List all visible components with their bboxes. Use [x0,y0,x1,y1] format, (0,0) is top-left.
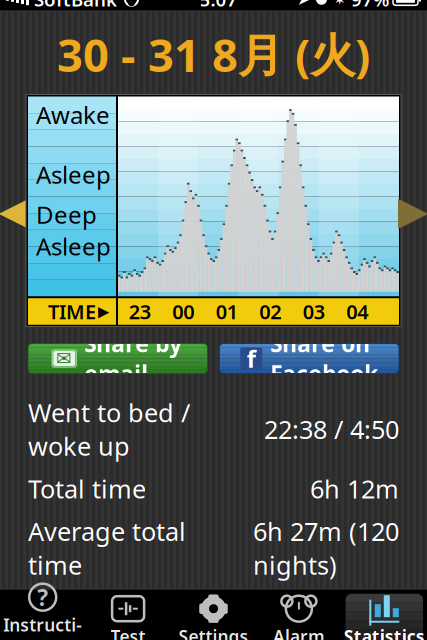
button[interactable]: Settings [171,592,256,640]
staticText: 23 [129,298,151,325]
staticText: 01 [216,298,238,325]
staticText: ✷ [333,0,346,8]
staticText: 5:07 [199,0,237,12]
staticText: 02 [259,298,281,325]
staticText: 22:38 / 4:50 [264,412,399,446]
staticText: f [247,343,256,374]
staticText: Total time [28,472,146,505]
staticText: 6h 12m [310,472,399,505]
button[interactable]: Statistics [342,592,427,640]
staticText: ✉ [56,348,72,369]
staticText: 6h 27m (120 nights) [253,514,399,582]
button[interactable]: Alarm [256,592,342,640]
staticText: 30 - 31 8月 (火) [57,24,370,84]
staticText: ▶ [98,303,109,320]
staticText: ➤ [297,0,310,8]
staticText: 00 [172,298,194,325]
staticText: Alarm [273,625,325,640]
button[interactable]: Test [85,592,171,640]
staticText: Awake [36,99,110,131]
staticText: Share on Facebook [270,328,378,389]
staticText: Went to bed / woke up [28,395,190,463]
staticText: 97% [351,0,389,12]
staticText: ▶ [397,188,427,233]
staticText: Average total time [28,514,186,582]
staticText: Asleep [36,230,111,262]
staticText: Settings [178,625,248,640]
staticText: 03 [303,298,325,325]
staticText: SoftBank [34,0,117,12]
button[interactable]: Previous night [2,175,26,245]
staticText: Share by email [84,328,182,389]
button[interactable]: ? [0,592,85,640]
button[interactable]: Next night [401,175,425,245]
staticText: Test [111,625,146,640]
button[interactable]: f [219,343,399,373]
staticText: Statistics [344,625,425,640]
staticText: ◀ [0,188,29,233]
button[interactable]: ✉ [28,343,207,373]
staticText: 04 [346,298,368,325]
staticText: Deep [36,198,97,230]
staticText: TIME [48,298,96,325]
staticText: Asleep [36,159,111,190]
staticText: ? [37,582,48,612]
staticText: Instructions [3,613,82,640]
